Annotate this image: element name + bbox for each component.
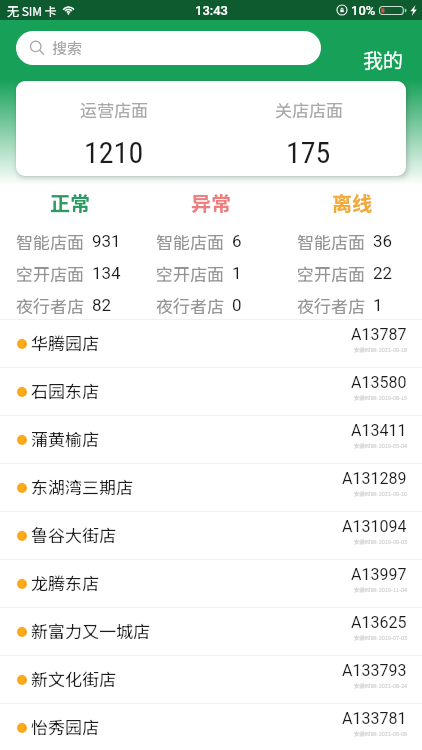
staticText: 运营店面 <box>80 97 148 122</box>
staticText: 安装时间: 2019-09-03 <box>354 538 407 546</box>
button[interactable]: 东湖湾三期店 <box>0 464 422 511</box>
staticText: A131094 <box>342 517 407 536</box>
staticText: 新文化街店 <box>31 666 116 691</box>
staticText: 安装时间: 2019-11-04 <box>354 586 407 594</box>
staticText: 离线 <box>332 188 372 217</box>
staticText: 鲁谷大街店 <box>31 522 116 547</box>
button[interactable]: 石园东店 <box>0 368 422 415</box>
staticText: A131289 <box>342 469 407 488</box>
staticText: 新富力又一城店 <box>31 618 150 643</box>
staticText: 夜行者店 <box>156 293 224 318</box>
staticText: 175 <box>286 135 331 170</box>
staticText: 怡秀园店 <box>31 714 99 739</box>
staticText: A13997 <box>351 565 407 584</box>
staticText: 异常 <box>191 188 231 217</box>
staticText: 安装时间: 2019-07-03 <box>354 634 407 642</box>
staticText: 0 <box>232 295 242 315</box>
staticText: 龙腾东店 <box>31 570 99 595</box>
staticText: 安装时间: 2021-08-24 <box>354 682 407 690</box>
staticText: 智能店面 <box>156 229 224 254</box>
button[interactable]: 华腾园店 <box>0 320 422 367</box>
staticText: 安装时间: 2021-09-18 <box>354 346 407 354</box>
button[interactable]: 新文化街店 <box>0 656 422 703</box>
staticText: 蒲黄榆店 <box>31 426 99 451</box>
staticText: 安装时间: 2019-08-15 <box>354 394 407 402</box>
button[interactable]: 我的 <box>344 31 422 65</box>
staticText: 82 <box>92 295 112 315</box>
staticText: 关店店面 <box>275 97 343 122</box>
staticText: 10% <box>351 3 376 18</box>
staticText: 安装时间: 2021-06-08 <box>354 730 407 738</box>
staticText: 1210 <box>84 135 144 170</box>
staticText: 正常 <box>50 188 90 217</box>
staticText: 空开店面 <box>297 261 365 286</box>
staticText: A13787 <box>351 325 407 344</box>
staticText: 搜索 <box>52 37 83 59</box>
staticText: 13:43 <box>195 3 228 18</box>
button[interactable]: 蒲黄榆店 <box>0 416 422 463</box>
button[interactable]: 新富力又一城店 <box>0 608 422 655</box>
button[interactable]: 鲁谷大街店 <box>0 512 422 559</box>
staticText: 夜行者店 <box>297 293 365 318</box>
staticText: 智能店面 <box>297 229 365 254</box>
staticText: 22 <box>373 263 393 283</box>
staticText: 1 <box>232 263 242 283</box>
staticText: A13625 <box>351 613 407 632</box>
staticText: 石园东店 <box>31 378 99 403</box>
staticText: 6 <box>232 231 242 251</box>
staticText: 我的 <box>363 45 403 74</box>
staticText: A13411 <box>351 421 407 440</box>
button[interactable]: 龙腾东店 <box>0 560 422 607</box>
button[interactable]: 搜索 <box>16 31 321 65</box>
staticText: 36 <box>373 231 393 251</box>
staticText: A133793 <box>342 661 407 680</box>
button[interactable]: 怡秀园店 <box>0 704 422 750</box>
staticText: 1 <box>373 295 383 315</box>
staticText: 空开店面 <box>156 261 224 286</box>
staticText: 安装时间: 2019-05-04 <box>354 442 407 450</box>
staticText: 无 SIM 卡 <box>7 2 57 19</box>
staticText: 智能店面 <box>16 229 84 254</box>
staticText: A13580 <box>351 373 407 392</box>
staticText: 安装时间: 2021-09-10 <box>354 490 407 498</box>
staticText: 931 <box>92 231 121 251</box>
staticText: 空开店面 <box>16 261 84 286</box>
staticText: 东湖湾三期店 <box>31 474 133 499</box>
staticText: 夜行者店 <box>16 293 84 318</box>
staticText: A133781 <box>342 709 407 728</box>
staticText: 华腾园店 <box>31 330 99 355</box>
staticText: 134 <box>92 263 121 283</box>
